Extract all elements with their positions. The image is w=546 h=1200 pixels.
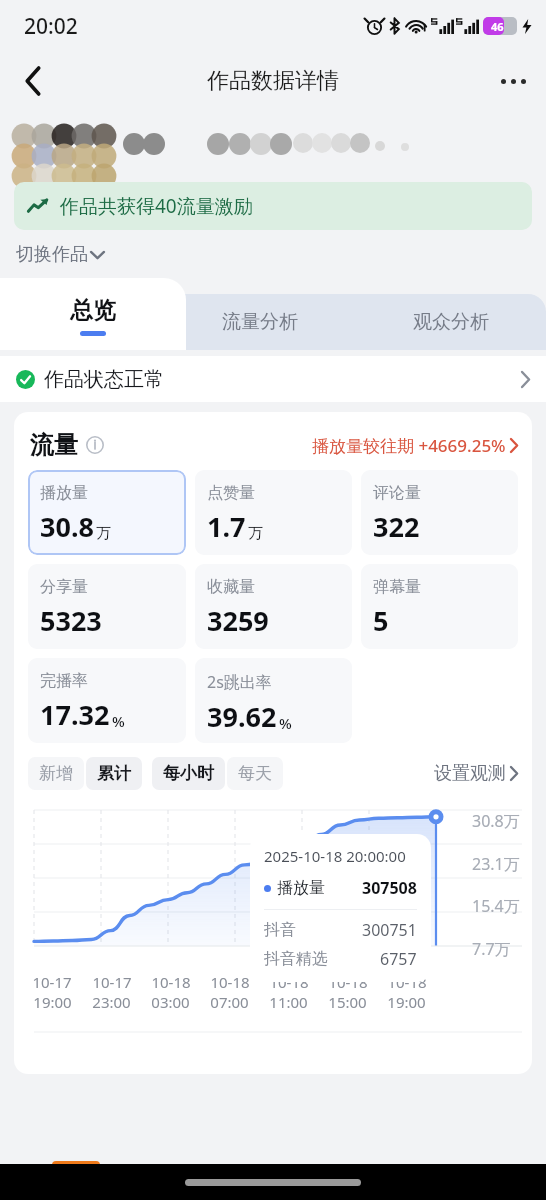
staticText: 播放量较往期 +4669.25% [312,434,506,457]
staticText: 设置观测 [434,762,506,785]
staticText: 累计 [97,763,131,784]
staticText: 流量分析 [222,310,298,334]
button[interactable]: 分享量 [28,564,186,649]
staticText: 10-17 [32,972,72,992]
staticText: 分享量 [40,577,88,597]
staticText: 23:00 [92,992,131,1012]
staticText: 10-17 [92,972,132,992]
staticText: 2s跳出率 [207,671,272,693]
staticText: 7.7万 [472,938,511,960]
staticText: 19:00 [387,992,426,1012]
staticText: 观众分析 [413,310,489,334]
staticText: 307508 [362,877,417,899]
button[interactable]: 收藏量 [195,564,352,649]
button[interactable]: 完播率 [28,658,186,743]
staticText: 30.8 [40,508,94,545]
staticText: 39.62 [207,698,277,735]
staticText: 20:02 [24,12,78,41]
staticText: 弹幕量 [373,577,421,597]
staticText: 万 [248,524,263,543]
staticText: 万 [96,524,111,543]
staticText: 46 [491,19,504,34]
staticText: 播放量 [277,878,325,898]
button[interactable]: 每天 [227,757,283,790]
button[interactable]: 切换作品 [16,243,104,266]
button[interactable]: 弹幕量 [361,564,518,649]
staticText: 15:00 [328,992,367,1012]
button[interactable]: 评论量 [361,470,518,555]
staticText: 作品共获得40流量激励 [60,193,253,219]
staticText: 10-18 [151,972,191,992]
button[interactable]: 作品状态正常 [0,356,546,402]
staticText: 作品数据详情 [207,67,339,95]
button[interactable]: 新增 [28,757,84,790]
staticText: 5323 [40,602,102,639]
staticText: 10-18 [387,972,427,992]
staticText: 1.7 [207,508,246,545]
button[interactable]: 播放量 [28,470,186,555]
staticText: 完播率 [40,671,88,691]
staticText: 流量 [30,430,78,460]
staticText: 30.8万 [472,810,520,832]
staticText: 10-18 [269,972,309,992]
staticText: 播放量 [40,483,88,503]
staticText: 11:00 [269,992,308,1012]
staticText: 点赞量 [207,483,255,503]
staticText: 322 [373,508,420,545]
button[interactable]: 2s跳出率 [195,658,352,743]
button[interactable]: Back [10,58,56,104]
button[interactable]: Info [86,436,104,454]
staticText: 6757 [380,948,417,970]
staticText: 07:00 [210,992,249,1012]
staticText: 10-18 [328,972,368,992]
staticText: 15.4万 [472,895,520,917]
staticText: % [279,713,292,733]
staticText: 3259 [207,602,269,639]
button[interactable]: 点赞量 [195,470,352,555]
staticText: 03:00 [151,992,190,1012]
button[interactable]: 总览 [0,278,186,350]
staticText: 抖音 [264,920,296,940]
button[interactable]: 作品共获得40流量激励 [14,182,532,230]
button[interactable]: 流量分析 [164,294,355,350]
staticText: 每小时 [163,763,214,784]
button[interactable]: More options [490,58,536,104]
staticText: 收藏量 [207,577,255,597]
button[interactable]: 播放量较往期 +4669.25% [312,434,518,457]
staticText: 切换作品 [16,243,88,266]
staticText: 19:00 [33,992,72,1012]
button[interactable]: 累计 [86,757,142,790]
staticText: 每天 [238,763,272,784]
staticText: 23.1万 [472,853,520,875]
staticText: 新增 [39,763,73,784]
staticText: 10-18 [210,972,250,992]
button[interactable]: 每小时 [152,757,225,790]
staticText: 5 [373,602,389,639]
button[interactable]: 设置观测 [434,762,518,785]
staticText: 作品状态正常 [44,367,164,392]
staticText: 评论量 [373,483,421,503]
staticText: 300751 [362,919,417,941]
staticText: % [112,711,125,731]
staticText: 抖音精选 [264,949,328,969]
staticText: 总览 [70,296,116,325]
button[interactable]: Home [185,1179,361,1186]
staticText: 2025-10-18 20:00:00 [264,846,406,866]
staticText: 17.32 [40,696,110,733]
button[interactable]: 观众分析 [355,294,546,350]
